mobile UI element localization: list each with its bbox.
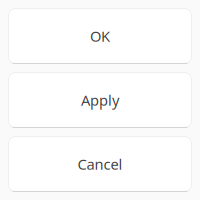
staticText: Apply [81,90,119,110]
staticText: OK [90,26,110,46]
button[interactable]: Apply [8,72,192,128]
staticText: Cancel [77,154,122,174]
button[interactable]: OK [8,8,192,64]
button[interactable]: Cancel [8,136,192,192]
